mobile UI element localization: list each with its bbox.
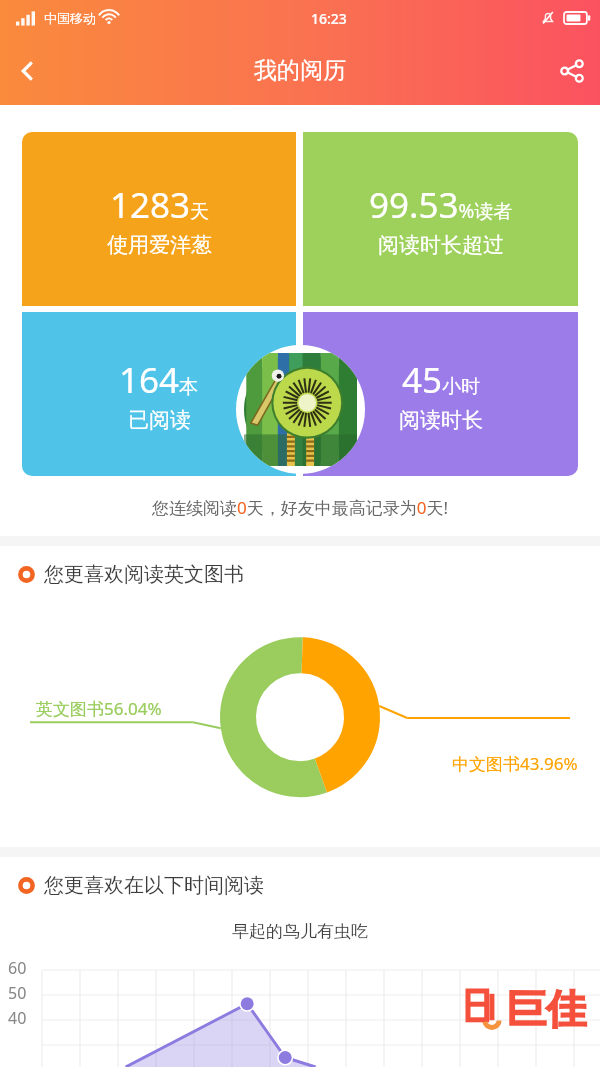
staticText: 中国移动 (44, 10, 96, 26)
button[interactable]: 您更喜欢在以下时间阅读 (18, 857, 600, 913)
staticText: 50 (8, 982, 27, 1004)
button[interactable]: Back (0, 43, 56, 99)
button[interactable]: 164本 (22, 312, 296, 476)
staticText: 164本 (119, 356, 199, 404)
staticText: 16:23 (311, 9, 347, 28)
staticText: 英文图书56.04% (36, 697, 162, 720)
staticText: 1283天 (110, 181, 210, 229)
staticText: 99.53%读者 (369, 181, 513, 229)
button[interactable]: Avatar (236, 345, 365, 474)
staticText: 您更喜欢在以下时间阅读 (44, 873, 264, 898)
staticText: 巨佳 (506, 984, 586, 1034)
staticText: 45小时 (402, 356, 481, 404)
staticText: 中文图书43.96% (452, 752, 578, 775)
staticText: 60 (8, 957, 27, 979)
button[interactable]: 99.53%读者 (303, 132, 578, 306)
staticText: 40 (8, 1007, 27, 1029)
button[interactable]: 1283天 (22, 132, 296, 306)
staticText: 您更喜欢阅读英文图书 (44, 562, 244, 587)
button[interactable]: 您更喜欢阅读英文图书 (18, 546, 600, 602)
staticText: 早起的鸟儿有虫吃 (0, 921, 600, 942)
button[interactable]: 45小时 (303, 312, 578, 476)
button[interactable]: Share (544, 43, 600, 99)
staticText: 阅读时长 (399, 407, 483, 433)
staticText: 您连续阅读0天，好友中最高记录为0天! (152, 496, 449, 519)
staticText: 已阅读 (128, 407, 191, 433)
staticText: 阅读时长超过 (378, 232, 504, 258)
staticText: 我的阅历 (254, 56, 346, 85)
staticText: 使用爱洋葱 (107, 232, 212, 258)
